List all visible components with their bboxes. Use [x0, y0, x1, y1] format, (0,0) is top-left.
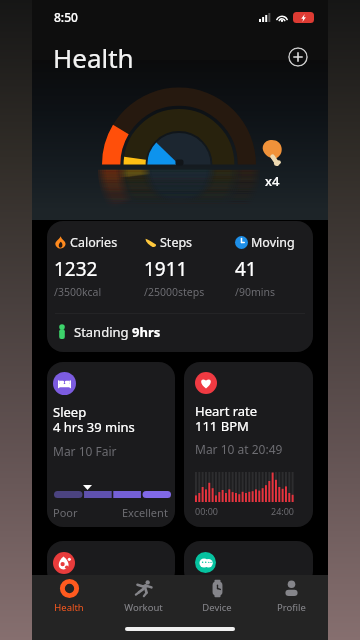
staticText: Mar 10 at 20:49 — [195, 441, 283, 457]
button[interactable] — [184, 541, 313, 587]
staticText: /90mins — [235, 285, 275, 299]
staticText: Workout — [124, 601, 163, 614]
staticText: Mar 10 Fair — [53, 443, 117, 459]
staticText: Steps — [160, 234, 193, 251]
staticText: Device — [202, 601, 232, 614]
staticText: 1911 — [144, 256, 188, 282]
button[interactable]: Heart rate — [184, 362, 313, 527]
staticText: Profile — [277, 601, 306, 614]
button[interactable] — [47, 541, 175, 587]
button[interactable]: Add — [288, 47, 308, 67]
staticText: x4 — [265, 172, 280, 190]
staticText: Excellent — [122, 505, 168, 520]
button[interactable]: Health — [32, 575, 106, 618]
staticText: 41 — [235, 256, 257, 282]
staticText: Moving — [251, 234, 295, 251]
staticText: 24:00 — [271, 505, 295, 517]
staticText: /25000steps — [144, 285, 205, 299]
staticText: 8:50 — [54, 9, 78, 25]
staticText: /3500kcal — [54, 285, 102, 299]
staticText: Sleep — [53, 403, 87, 421]
button[interactable]: Calories — [47, 221, 313, 352]
staticText: Heart rate — [195, 402, 258, 420]
button[interactable]: Profile — [254, 575, 328, 618]
button[interactable]: Workout — [106, 575, 180, 618]
staticText: 9hrs — [132, 323, 161, 341]
staticText: Health — [54, 601, 84, 614]
staticText: 1232 — [54, 256, 98, 282]
staticText: 00:00 — [195, 505, 219, 517]
staticText: Standing — [74, 323, 132, 341]
staticText: Health — [53, 40, 134, 75]
button[interactable]: Sleep — [47, 362, 175, 527]
button[interactable]: Device — [180, 575, 254, 618]
staticText: 4 hrs 39 mins — [53, 418, 135, 436]
staticText: Poor — [53, 505, 78, 520]
staticText: 111 BPM — [195, 417, 249, 435]
staticText: Calories — [70, 234, 118, 251]
